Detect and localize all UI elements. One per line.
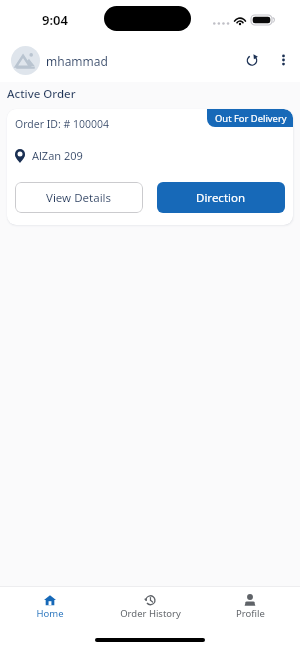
button[interactable]: Profile picture [11,46,40,75]
staticText: View Details [46,190,112,206]
staticText: Order ID: # 100004 [15,117,110,131]
staticText: 9:04 [42,11,68,29]
staticText: Order History [120,607,181,620]
staticText: Home [36,607,64,620]
staticText: Active Order [7,86,76,102]
button[interactable]: Refresh [239,47,265,73]
staticText: AlZan 209 [32,148,83,163]
button[interactable]: Order History [100,587,200,625]
staticText: Direction [196,190,246,206]
button[interactable]: Direction [157,182,285,213]
button[interactable]: More options [272,49,294,71]
button[interactable]: Profile [200,587,300,625]
staticText: mhammad [46,53,108,69]
button[interactable]: Out For Delivery [207,109,293,127]
button[interactable]: Home [0,587,100,625]
button[interactable]: View Details [15,182,143,213]
staticText: Profile [236,607,265,620]
staticText: Out For Delivery [215,112,287,125]
